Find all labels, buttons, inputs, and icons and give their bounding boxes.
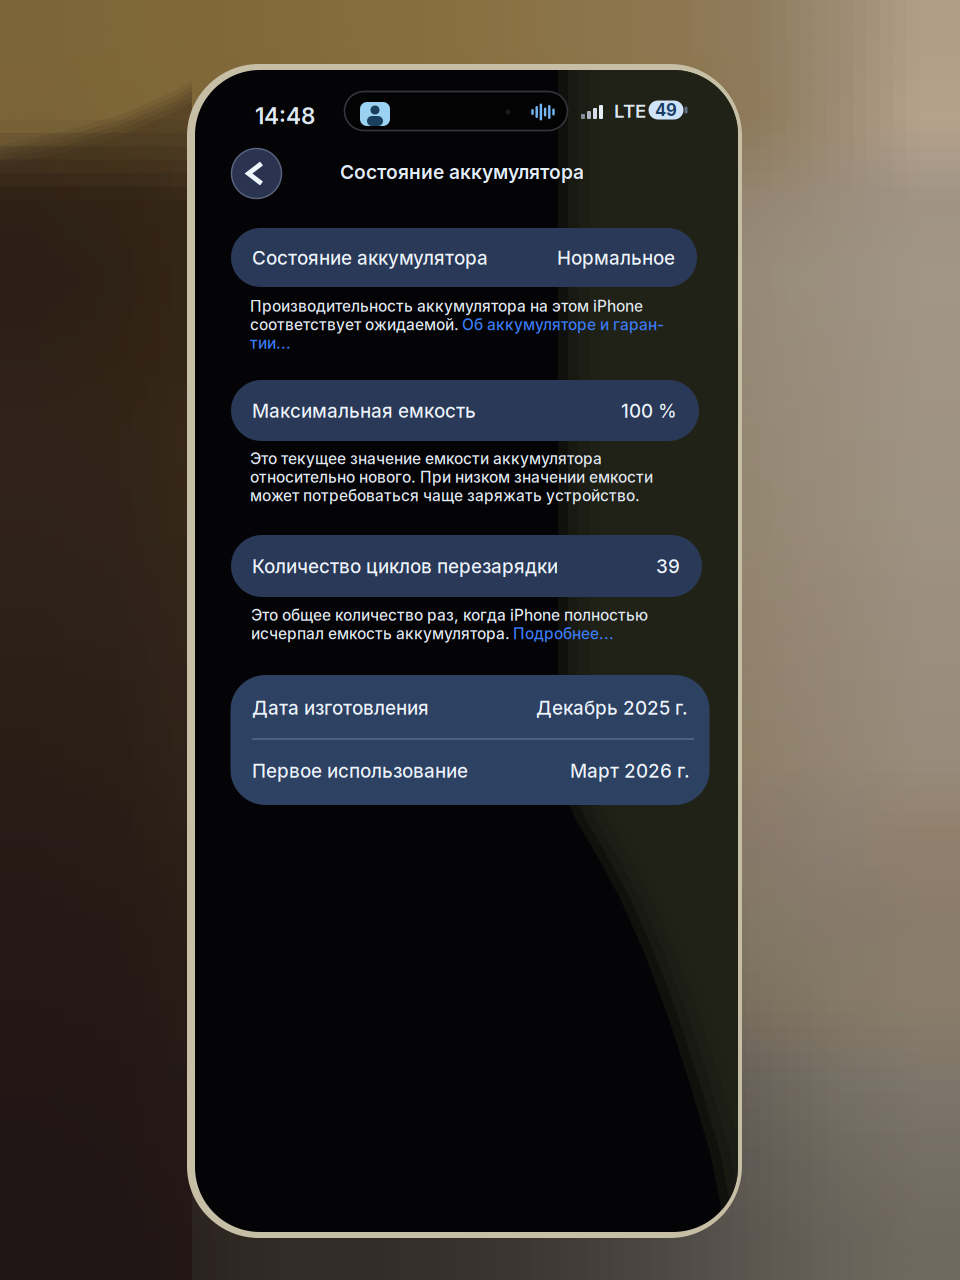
staticText: Это текущее значение емкости аккумулятор… bbox=[250, 449, 602, 468]
staticText: соответствует ожидаемой. bbox=[250, 315, 459, 334]
staticText: Максимальная емкость bbox=[252, 400, 476, 422]
staticText: Состояние аккумулятора bbox=[252, 247, 488, 269]
staticText: относительно нового. При низком значении… bbox=[250, 468, 653, 486]
staticText: Нормальное bbox=[557, 247, 675, 269]
staticText: Количество циклов перезарядки bbox=[252, 555, 558, 578]
staticText: Состояние аккумулятора bbox=[340, 160, 584, 184]
button[interactable]: Назад bbox=[231, 148, 281, 198]
staticText: Март 2026 г. bbox=[570, 760, 690, 782]
staticText: 14:48 bbox=[255, 102, 315, 130]
staticText: Дата изготовления bbox=[252, 697, 429, 719]
staticText: Декабрь 2025 г. bbox=[536, 697, 688, 719]
staticText: Подробнее... bbox=[513, 624, 614, 643]
button[interactable]: Максимальная емкость bbox=[0, 0, 960, 1280]
staticText: 100 % bbox=[621, 400, 677, 422]
staticText: Первое использование bbox=[252, 760, 468, 782]
staticText: Об аккумуляторе и гаран- bbox=[462, 315, 664, 334]
staticText: 39 bbox=[656, 555, 680, 578]
staticText: может потребоваться чаще заряжать устрой… bbox=[250, 486, 640, 505]
button[interactable]: Количество циклов перезарядки bbox=[0, 0, 960, 1280]
staticText: исчерпал емкость аккумулятора. bbox=[251, 624, 510, 643]
staticText: LTE bbox=[614, 100, 646, 122]
button[interactable]: Первое использование bbox=[0, 0, 960, 1280]
staticText: 49 bbox=[655, 100, 677, 120]
staticText: Это общее количество раз, когда iPhone п… bbox=[251, 606, 648, 624]
button[interactable]: Дата изготовления bbox=[0, 0, 960, 1280]
staticText: тии... bbox=[250, 334, 291, 352]
staticText: Производительность аккумулятора на этом … bbox=[250, 297, 643, 315]
button[interactable]: Состояние аккумулятора bbox=[0, 0, 960, 1280]
